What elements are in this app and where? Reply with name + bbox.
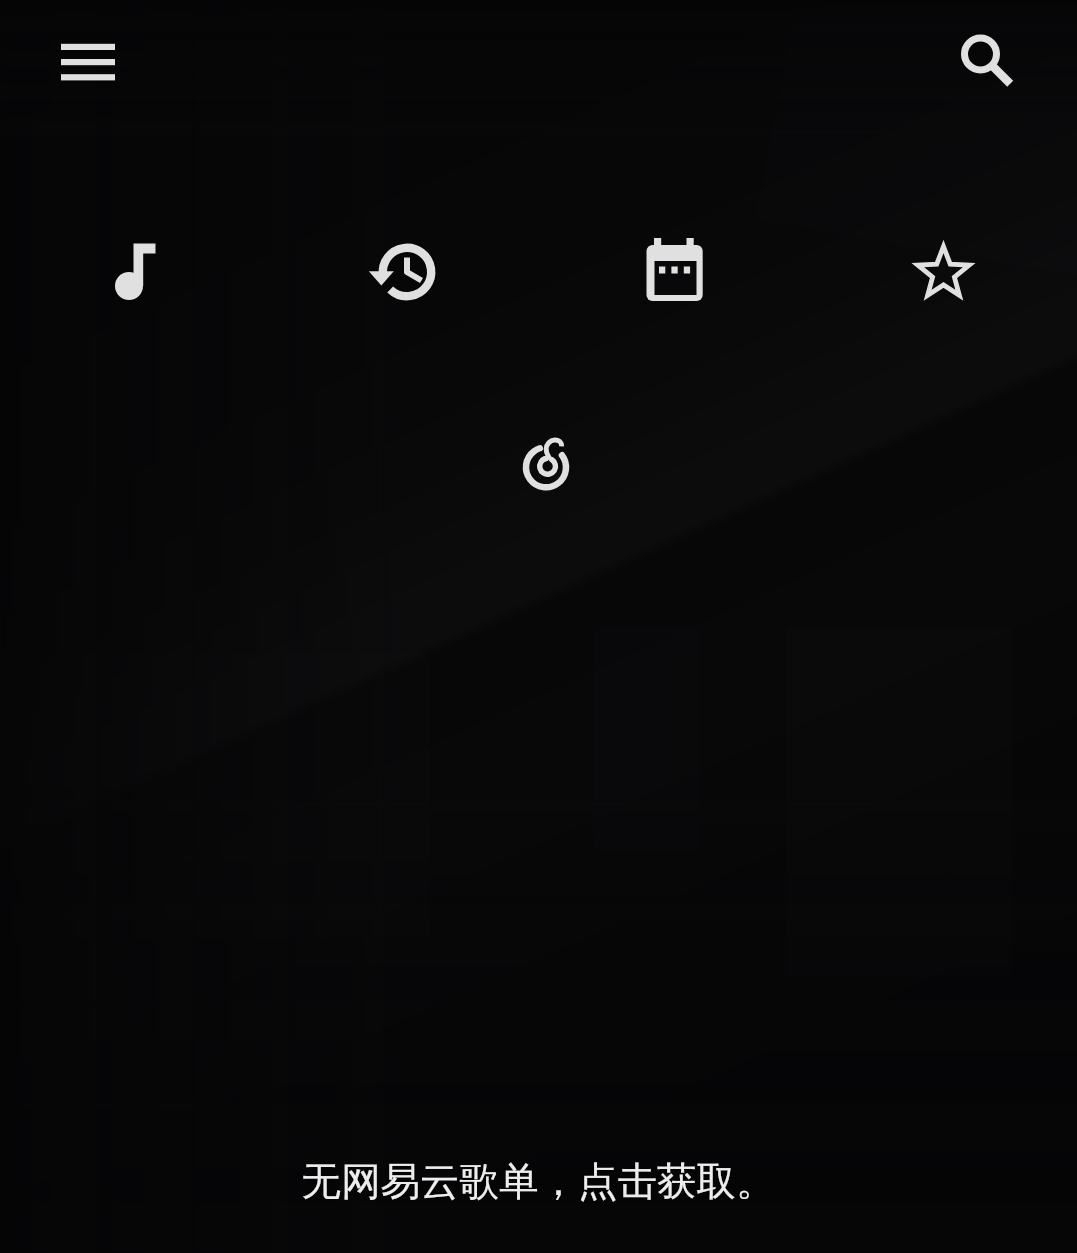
button[interactable]: History xyxy=(377,242,437,302)
button[interactable]: Calendar xyxy=(645,242,705,302)
button[interactable]: NetEase Cloud Music xyxy=(511,433,581,503)
staticText: 无网易云歌单，点击获取。 xyxy=(0,1157,1077,1207)
button[interactable]: Search xyxy=(947,21,1019,93)
button[interactable]: Menu xyxy=(52,30,124,92)
button[interactable]: 无网易云歌单，点击获取。 xyxy=(0,1157,1077,1217)
button[interactable]: Favorites xyxy=(913,242,973,302)
button[interactable]: Music xyxy=(106,242,166,302)
